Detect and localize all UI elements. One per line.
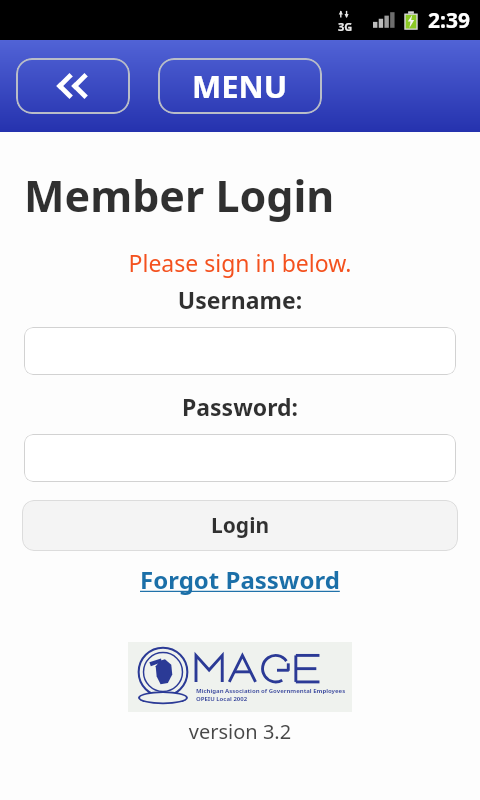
staticText: Login bbox=[211, 511, 270, 540]
staticText: Please sign in below. bbox=[0, 247, 480, 278]
staticText: Member Login bbox=[24, 166, 335, 225]
staticText: OPEIU Local 2002 bbox=[196, 695, 248, 703]
staticText: Password: bbox=[0, 391, 480, 422]
staticText: 2:39 bbox=[428, 6, 470, 35]
staticText: version 3.2 bbox=[0, 718, 480, 745]
staticText: Username: bbox=[0, 284, 480, 315]
button[interactable] bbox=[24, 434, 456, 482]
staticText: Michigan Association of Governmental Emp… bbox=[196, 687, 346, 695]
staticText: 3G bbox=[338, 19, 353, 34]
button[interactable]: MENU bbox=[158, 58, 322, 114]
button[interactable]: Back bbox=[16, 58, 130, 114]
button[interactable] bbox=[24, 327, 456, 375]
staticText: Forgot Password bbox=[140, 563, 340, 596]
button[interactable]: Login bbox=[22, 500, 458, 551]
staticText: MENU bbox=[192, 65, 288, 107]
button[interactable]: Forgot Password bbox=[134, 561, 346, 598]
